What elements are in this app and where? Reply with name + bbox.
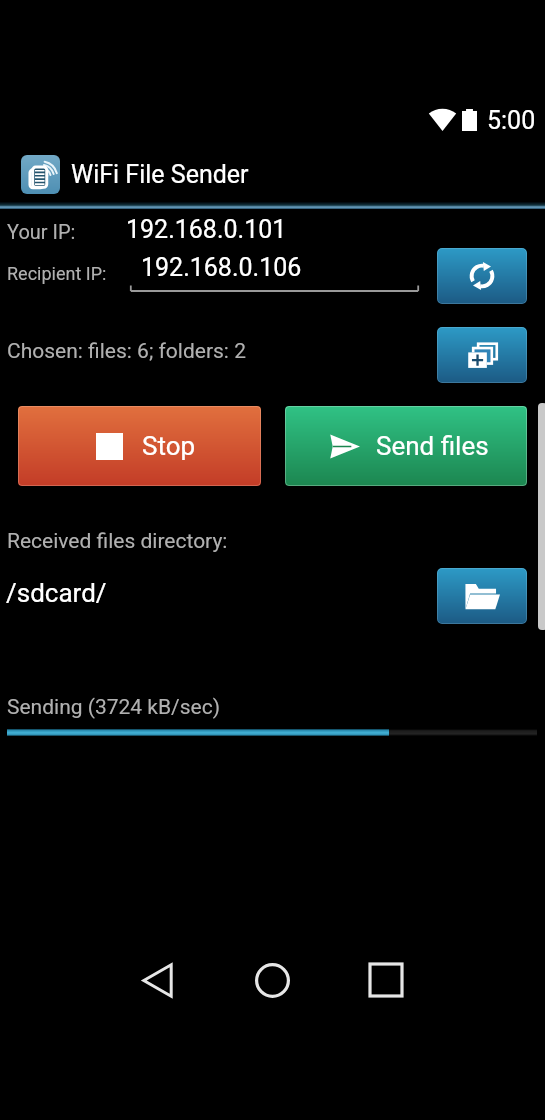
button[interactable]: Browse folder: [437, 568, 527, 624]
staticText: WiFi File Sender: [71, 160, 249, 189]
staticText: Received files directory:: [7, 529, 228, 554]
button[interactable]: Add files: [437, 327, 527, 383]
staticText: 192.168.0.106: [141, 253, 302, 282]
staticText: Send files: [376, 431, 489, 461]
staticText: /sdcard/: [6, 578, 107, 608]
button[interactable]: Refresh: [437, 248, 527, 304]
staticText: Chosen: files: 6; folders: 2: [7, 339, 246, 364]
staticText: Sending (3724 kB/sec): [7, 695, 221, 720]
staticText: Recipient IP:: [7, 263, 107, 284]
button[interactable]: Back: [125, 940, 189, 1020]
button[interactable]: Recent apps: [354, 940, 418, 1020]
button[interactable]: Send files: [285, 406, 527, 486]
button[interactable]: Stop: [18, 406, 261, 486]
button[interactable]: Home: [240, 940, 304, 1020]
staticText: Your IP:: [7, 220, 76, 243]
staticText: 5:00: [487, 106, 536, 135]
staticText: 192.168.0.101: [126, 215, 287, 244]
staticText: Stop: [142, 431, 196, 461]
